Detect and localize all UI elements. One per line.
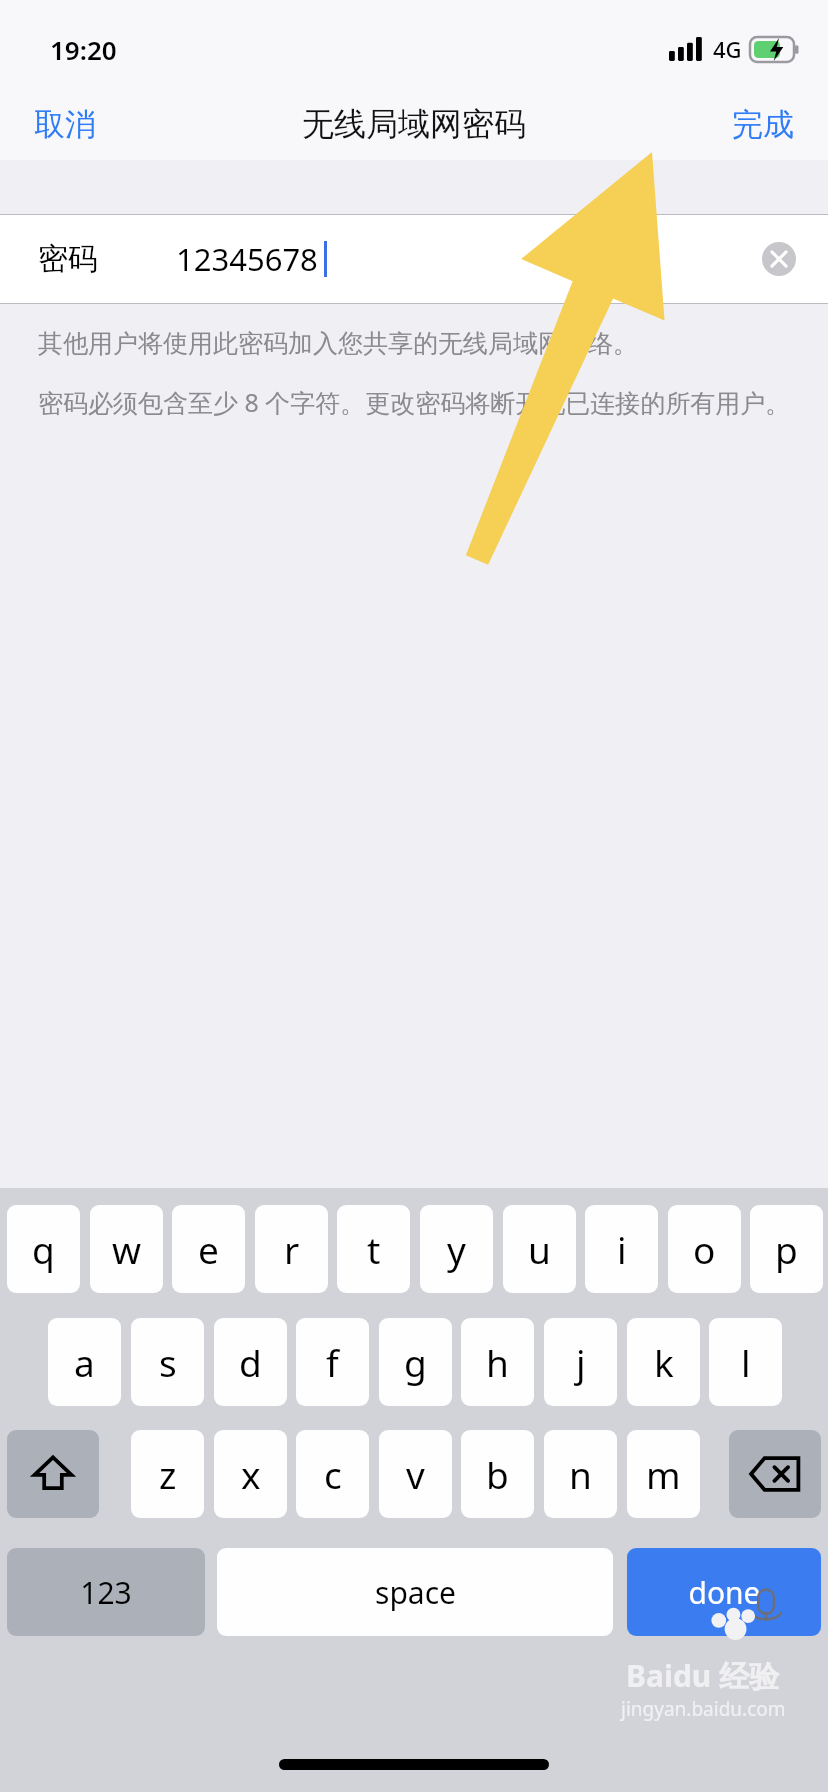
button[interactable]: z <box>131 1430 204 1518</box>
staticText: l <box>741 1337 751 1387</box>
button[interactable]: x <box>214 1430 287 1518</box>
button[interactable]: e <box>172 1205 245 1293</box>
button[interactable]: y <box>420 1205 493 1293</box>
button[interactable]: o <box>668 1205 741 1293</box>
button[interactable]: s <box>131 1318 204 1406</box>
staticText: 其他用户将使用此密码加入您共享的无线局域网网络。 <box>38 328 638 359</box>
button[interactable]: k <box>627 1318 700 1406</box>
button[interactable]: v <box>379 1430 452 1518</box>
staticText: k <box>654 1337 674 1387</box>
staticText: Baidu 经验 <box>626 1655 780 1696</box>
button[interactable]: space <box>217 1548 613 1636</box>
button[interactable]: 123 <box>7 1548 205 1636</box>
button[interactable]: done <box>627 1548 821 1636</box>
staticText: 123 <box>80 1572 132 1613</box>
staticText: n <box>569 1449 592 1499</box>
button[interactable]: j <box>544 1318 617 1406</box>
button[interactable]: Clear text <box>762 242 796 276</box>
staticText: j <box>576 1337 586 1387</box>
staticText: d <box>239 1337 262 1387</box>
staticText: 12345678 <box>176 238 318 280</box>
staticText: m <box>646 1449 681 1499</box>
button[interactable]: h <box>461 1318 534 1406</box>
button[interactable]: d <box>214 1318 287 1406</box>
staticText: r <box>284 1224 300 1274</box>
button[interactable]: b <box>461 1430 534 1518</box>
staticText: 19:20 <box>50 32 117 67</box>
staticText: 完成 <box>732 105 794 144</box>
staticText: e <box>198 1224 219 1274</box>
staticText: s <box>159 1337 177 1387</box>
button[interactable]: i <box>585 1205 658 1293</box>
staticText: o <box>693 1224 716 1274</box>
staticText: 无线局域网密码 <box>302 104 526 144</box>
staticText: p <box>775 1224 798 1274</box>
button[interactable]: 完成 <box>698 95 828 154</box>
staticText: b <box>486 1449 509 1499</box>
staticText: 4G <box>713 34 742 64</box>
button[interactable]: c <box>296 1430 369 1518</box>
button[interactable]: p <box>750 1205 823 1293</box>
staticText: done <box>688 1572 761 1613</box>
button[interactable]: 取消 <box>0 95 130 154</box>
button[interactable]: Backspace <box>729 1430 821 1518</box>
staticText: jingyan.baidu.com <box>621 1696 786 1722</box>
button[interactable]: r <box>255 1205 328 1293</box>
staticText: u <box>528 1224 551 1274</box>
staticText: g <box>404 1337 427 1387</box>
button[interactable]: w <box>90 1205 163 1293</box>
button[interactable]: t <box>337 1205 410 1293</box>
button[interactable]: n <box>544 1430 617 1518</box>
staticText: c <box>324 1449 342 1499</box>
staticText: space <box>375 1572 456 1613</box>
staticText: f <box>326 1337 339 1387</box>
staticText: 取消 <box>34 105 96 144</box>
staticText: h <box>486 1337 509 1387</box>
staticText: 密码 <box>38 240 98 278</box>
staticText: 密码必须包含至少 8 个字符。更改密码将断开现已连接的所有用户。 <box>38 385 791 419</box>
button[interactable]: l <box>709 1318 782 1406</box>
staticText: v <box>406 1449 425 1499</box>
staticText: w <box>112 1224 142 1274</box>
staticText: a <box>74 1337 95 1387</box>
button[interactable]: Shift <box>7 1430 99 1518</box>
button[interactable]: f <box>296 1318 369 1406</box>
button[interactable]: u <box>503 1205 576 1293</box>
button[interactable]: m <box>627 1430 700 1518</box>
staticText: z <box>159 1449 177 1499</box>
staticText: t <box>367 1224 381 1274</box>
button[interactable]: a <box>48 1318 121 1406</box>
button[interactable]: 密码 <box>0 215 828 303</box>
staticText: x <box>241 1449 261 1499</box>
button[interactable]: g <box>379 1318 452 1406</box>
staticText: i <box>617 1224 627 1274</box>
button[interactable]: q <box>7 1205 80 1293</box>
staticText: y <box>447 1224 466 1274</box>
staticText: q <box>32 1224 55 1274</box>
